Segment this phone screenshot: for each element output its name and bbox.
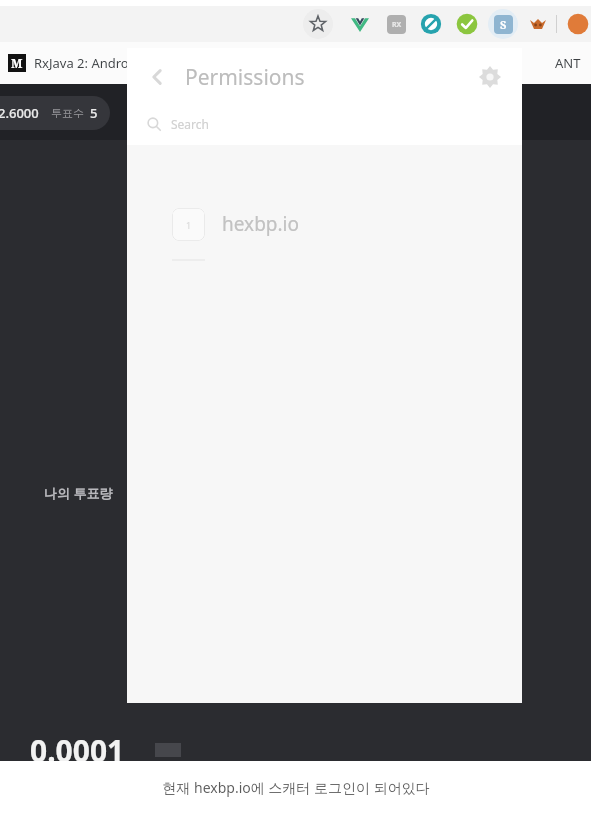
staticText: RX [392, 20, 402, 30]
button[interactable]: Checked [456, 13, 478, 35]
staticText: hexbp.io [222, 211, 299, 237]
button[interactable]: Back [139, 59, 175, 95]
button[interactable]: 1 [127, 200, 522, 248]
staticText: 2.6000 [0, 104, 39, 122]
button[interactable]: Profile [567, 13, 589, 35]
staticText: RxJava 2: Andro [34, 54, 129, 72]
staticText: 5 [90, 104, 98, 122]
button[interactable]: Block [420, 13, 442, 35]
button[interactable]: Scatter [488, 9, 518, 39]
staticText: 현재 hexbp.io에 스캐터 로그인이 되어있다 [162, 778, 430, 797]
staticText: 0.0001 [30, 730, 125, 771]
staticText: M [11, 55, 23, 71]
button[interactable]: Search [127, 104, 522, 144]
staticText: Search [171, 116, 209, 132]
staticText: 투표수 [51, 106, 84, 120]
button[interactable]: Settings [470, 57, 510, 97]
staticText: ANT [555, 54, 581, 72]
button[interactable]: Bookmark [303, 9, 333, 39]
button[interactable]: Vue Devtools [347, 11, 373, 37]
staticText: Permissions [185, 63, 305, 92]
staticText: 1 [186, 219, 192, 231]
button[interactable]: React Devtools [387, 15, 406, 34]
staticText: 나의 투표량 [44, 484, 113, 502]
staticText: S [500, 17, 507, 32]
button[interactable]: Extension [528, 14, 548, 34]
